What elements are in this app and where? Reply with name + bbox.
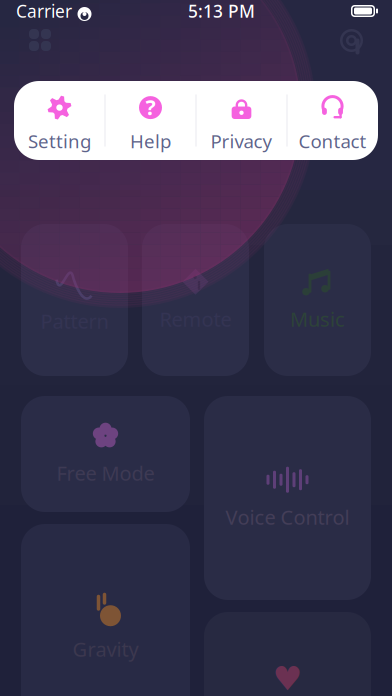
staticText: ♥ <box>272 660 302 696</box>
button[interactable]: Privacy <box>196 81 286 160</box>
staticText: Voice Control <box>225 504 349 530</box>
staticText: Privacy <box>210 129 272 153</box>
staticText: Carrier <box>16 0 72 22</box>
button[interactable]: All devices <box>29 29 51 51</box>
staticText: Contact <box>298 129 366 153</box>
staticText: Gravity <box>72 636 138 662</box>
staticText: 5:13 PM <box>188 0 255 22</box>
staticText: Music <box>290 306 345 332</box>
staticText: Setting <box>28 129 91 153</box>
staticText: Help <box>130 129 171 153</box>
button[interactable]: ? <box>105 81 195 160</box>
staticText: ? <box>145 93 155 121</box>
button[interactable]: Contact <box>287 81 377 160</box>
staticText: Pattern <box>40 308 108 334</box>
staticText: Remote <box>159 306 231 332</box>
button[interactable]: Setting <box>14 81 104 160</box>
button[interactable]: Scenes <box>339 28 364 53</box>
staticText: Free Mode <box>56 460 154 486</box>
